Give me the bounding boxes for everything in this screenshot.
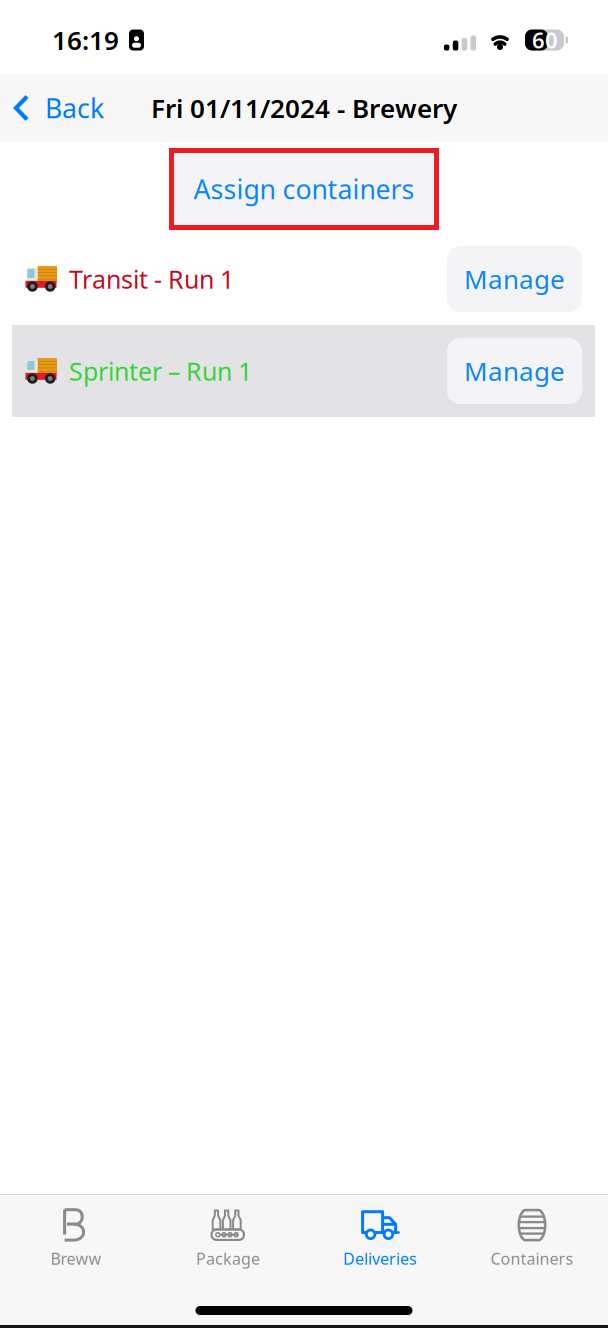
staticText: Manage xyxy=(464,261,565,297)
button[interactable]: Back xyxy=(0,74,114,142)
staticText: Fri 01/11/2024 - Brewery xyxy=(151,90,457,126)
staticText: Deliveries xyxy=(343,1248,417,1269)
staticText: Containers xyxy=(490,1248,573,1269)
button[interactable]: Assign containers xyxy=(169,148,439,230)
button[interactable]: Sprinter – Run 1 xyxy=(0,325,608,417)
staticText: Transit - Run 1 xyxy=(69,262,234,296)
button[interactable]: Breww xyxy=(0,1203,152,1275)
staticText: Breww xyxy=(50,1248,101,1269)
staticText: Sprinter – Run 1 xyxy=(69,354,252,388)
staticText: Assign containers xyxy=(193,171,414,207)
button[interactable]: Transit - Run 1 xyxy=(0,233,608,325)
button[interactable]: Containers xyxy=(456,1203,608,1275)
staticText: Manage xyxy=(464,353,565,389)
button[interactable]: Package xyxy=(152,1203,304,1275)
staticText: 60 xyxy=(532,25,558,55)
staticText: Package xyxy=(196,1248,260,1269)
staticText: Back xyxy=(45,90,104,126)
staticText: 16:19 xyxy=(52,22,119,58)
button[interactable]: Manage xyxy=(447,246,582,312)
button[interactable]: Deliveries xyxy=(304,1203,456,1275)
button[interactable]: Manage xyxy=(447,338,582,404)
